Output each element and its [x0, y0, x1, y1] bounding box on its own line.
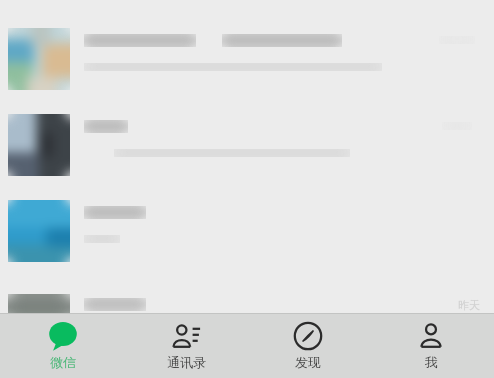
staticText: 我 [425, 354, 438, 370]
button[interactable]: WeChat [3, 314, 123, 378]
button[interactable] [0, 194, 494, 280]
other: Me [416, 321, 446, 351]
staticText: 微信 [50, 354, 76, 370]
button[interactable]: 昨天 [0, 280, 494, 320]
other: Discover [293, 321, 323, 351]
other: Contacts [171, 321, 201, 351]
button[interactable]: Contacts [126, 314, 246, 378]
staticText: 发现 [295, 354, 321, 370]
staticText: 昨天 [458, 298, 480, 312]
other: WeChat [48, 321, 78, 351]
button[interactable] [0, 108, 494, 194]
button[interactable]: Discover [248, 314, 368, 378]
staticText: 通讯录 [167, 354, 206, 370]
button[interactable]: Me [371, 314, 491, 378]
button[interactable] [0, 0, 494, 108]
